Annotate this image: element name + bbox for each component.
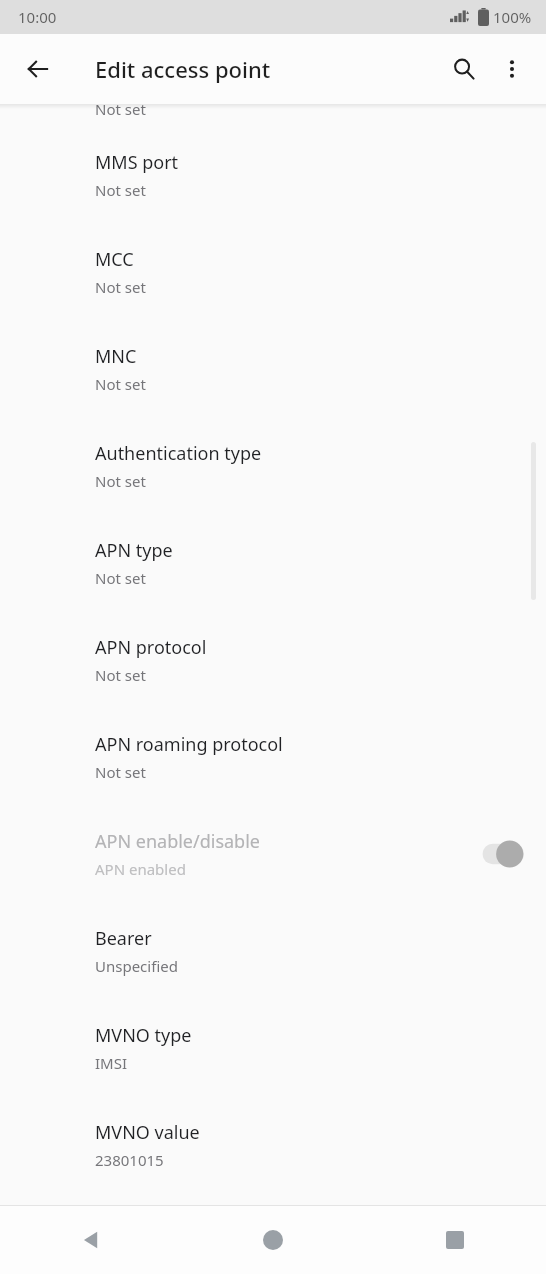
button: APN enable/disable bbox=[0, 805, 546, 902]
staticText: Unspecified bbox=[95, 956, 178, 976]
button[interactable]: MMS port bbox=[0, 126, 546, 223]
button[interactable]: APN type bbox=[0, 514, 546, 611]
staticText: APN type bbox=[95, 538, 173, 563]
staticText: 23801015 bbox=[95, 1150, 164, 1170]
button[interactable]: APN enable/disable toggle bbox=[468, 837, 524, 871]
button[interactable]: Back bbox=[14, 45, 62, 93]
staticText: MMS port bbox=[95, 150, 179, 175]
staticText: Not set bbox=[95, 374, 146, 394]
button[interactable]: Authentication type bbox=[0, 417, 546, 514]
staticText: MVNO type bbox=[95, 1023, 192, 1048]
button[interactable]: MVNO type bbox=[0, 999, 546, 1096]
button[interactable]: Bearer bbox=[0, 902, 546, 999]
button[interactable]: Back bbox=[0, 1206, 182, 1274]
staticText: Not set bbox=[95, 277, 146, 297]
button[interactable]: More options bbox=[488, 45, 536, 93]
staticText: 100% bbox=[493, 7, 532, 27]
staticText: IMSI bbox=[95, 1053, 128, 1073]
staticText: APN enabled bbox=[95, 859, 186, 879]
staticText: Authentication type bbox=[95, 441, 262, 466]
button[interactable]: MCC bbox=[0, 223, 546, 320]
staticText: Not set bbox=[95, 665, 146, 685]
button[interactable]: Home bbox=[182, 1206, 364, 1274]
button[interactable]: Recent apps bbox=[364, 1206, 546, 1274]
staticText: MVNO value bbox=[95, 1120, 200, 1145]
button[interactable]: Search bbox=[440, 45, 488, 93]
staticText: Edit access point bbox=[95, 54, 271, 84]
staticText: MCC bbox=[95, 247, 134, 272]
staticText: Not set bbox=[95, 99, 146, 119]
button[interactable]: MVNO value bbox=[0, 1096, 546, 1193]
button[interactable]: MNC bbox=[0, 320, 546, 417]
staticText: Not set bbox=[95, 762, 146, 782]
staticText: APN roaming protocol bbox=[95, 732, 283, 757]
staticText: MNC bbox=[95, 344, 137, 369]
button[interactable]: APN protocol bbox=[0, 611, 546, 708]
staticText: APN protocol bbox=[95, 635, 207, 660]
button[interactable]: APN roaming protocol bbox=[0, 708, 546, 805]
staticText: Bearer bbox=[95, 926, 152, 951]
staticText: Not set bbox=[95, 180, 146, 200]
staticText: Not set bbox=[95, 471, 146, 491]
staticText: APN enable/disable bbox=[95, 829, 260, 854]
staticText: Not set bbox=[95, 568, 146, 588]
staticText: 10:00 bbox=[18, 7, 57, 27]
